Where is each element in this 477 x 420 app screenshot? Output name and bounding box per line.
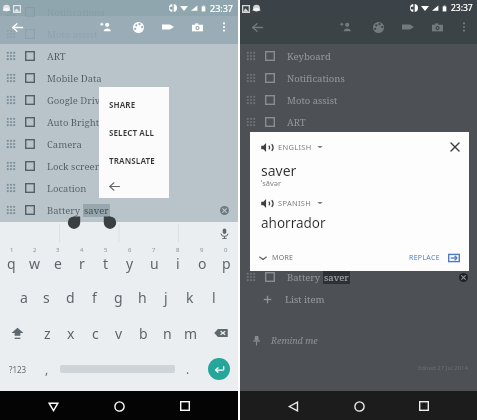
button[interactable]: Back xyxy=(246,16,268,38)
staticText: Location xyxy=(47,182,87,195)
button[interactable]: Space xyxy=(58,351,177,387)
staticText: i xyxy=(176,254,180,273)
staticText: TRANSLATE xyxy=(109,155,155,166)
button[interactable]: REPLACE xyxy=(409,252,460,264)
button[interactable]: Location xyxy=(0,177,238,199)
staticText: SHARE xyxy=(109,99,136,110)
button[interactable]: Colour xyxy=(367,16,389,38)
button[interactable]: 8 xyxy=(166,244,190,279)
button[interactable]: SPANISH xyxy=(261,192,469,214)
staticText: Battery xyxy=(287,271,323,284)
button[interactable]: Notifications xyxy=(240,67,477,89)
staticText: , xyxy=(45,361,49,377)
button[interactable]: 7 xyxy=(142,244,166,279)
button[interactable]: Back xyxy=(280,393,306,419)
button[interactable]: Home xyxy=(346,393,372,419)
button[interactable]: l xyxy=(202,279,226,315)
button[interactable]: 1 xyxy=(0,244,23,279)
button[interactable]: Enter xyxy=(199,351,238,387)
staticText: k xyxy=(186,288,194,307)
button[interactable]: g xyxy=(106,279,130,315)
button[interactable]: 9 xyxy=(190,244,214,279)
button[interactable]: Recents xyxy=(172,393,198,419)
button[interactable]: h xyxy=(130,279,154,315)
button[interactable]: s xyxy=(35,279,58,315)
staticText: 9 xyxy=(200,246,204,254)
button[interactable]: Battery xyxy=(0,199,238,221)
button[interactable]: 3 xyxy=(46,244,70,279)
button[interactable]: SELECT ALL xyxy=(99,118,169,146)
button[interactable]: k xyxy=(178,279,202,315)
button[interactable]: b xyxy=(131,315,155,351)
button[interactable]: Back xyxy=(6,16,28,38)
button[interactable]: Camera xyxy=(426,16,448,38)
button[interactable]: More options xyxy=(213,16,235,38)
button[interactable]: Label xyxy=(397,16,419,38)
button[interactable]: 4 xyxy=(70,244,94,279)
button[interactable]: 5 xyxy=(94,244,118,279)
staticText: . xyxy=(186,361,190,377)
button[interactable]: a xyxy=(12,279,35,315)
button[interactable]: Add person xyxy=(335,16,357,38)
button[interactable]: Moto assist xyxy=(240,89,477,111)
button[interactable]: 2 xyxy=(23,244,46,279)
button[interactable]: Recents xyxy=(411,393,437,419)
staticText: Auto Brightness xyxy=(47,116,119,129)
button[interactable]: List item xyxy=(240,288,477,310)
button[interactable]: Camera xyxy=(0,133,238,155)
button[interactable]: ART xyxy=(240,111,477,133)
button[interactable]: Camera xyxy=(186,16,208,38)
button[interactable]: x xyxy=(59,315,83,351)
button[interactable]: ART xyxy=(0,45,238,67)
button[interactable]: ?123 xyxy=(0,351,36,387)
button[interactable]: Colour xyxy=(127,16,149,38)
button[interactable]: j xyxy=(154,279,178,315)
button[interactable]: Keyboard xyxy=(240,45,477,67)
staticText: g xyxy=(114,288,123,307)
staticText: a xyxy=(20,288,28,307)
button[interactable]: Back xyxy=(40,393,66,419)
button[interactable]: TRANSLATE xyxy=(99,146,169,174)
button[interactable]: Backspace xyxy=(203,315,238,351)
staticText: Remind me xyxy=(271,334,318,346)
button[interactable]: Lock screen xyxy=(0,155,238,177)
staticText: Moto assist xyxy=(287,94,338,107)
button[interactable]: c xyxy=(83,315,107,351)
button[interactable]: Add person xyxy=(95,16,117,38)
button[interactable]: SHARE xyxy=(99,90,169,118)
button[interactable]: m xyxy=(179,315,203,351)
button[interactable]: Clear xyxy=(216,202,232,218)
button[interactable]: More options xyxy=(453,16,475,38)
button[interactable]: Back xyxy=(99,174,169,198)
button[interactable]: v xyxy=(107,315,131,351)
button[interactable]: Google Drive xyxy=(0,89,238,111)
button[interactable]: z xyxy=(35,315,59,351)
button[interactable]: d xyxy=(58,279,82,315)
button[interactable]: Shift xyxy=(0,315,35,351)
staticText: r xyxy=(79,254,85,273)
button[interactable]: , xyxy=(36,351,58,387)
button[interactable]: Mobile Data xyxy=(0,67,238,89)
button[interactable]: 6 xyxy=(118,244,142,279)
button[interactable]: 0 xyxy=(214,244,238,279)
button[interactable]: Close xyxy=(444,136,466,158)
button[interactable]: f xyxy=(82,279,106,315)
button[interactable]: ENGLISH xyxy=(261,136,464,158)
button[interactable]: . xyxy=(177,351,199,387)
staticText: x xyxy=(67,324,75,343)
button[interactable]: n xyxy=(155,315,179,351)
button[interactable]: Home xyxy=(106,393,132,419)
button[interactable]: Voice input xyxy=(216,225,232,241)
button[interactable]: Auto Brightness xyxy=(0,111,238,133)
button[interactable]: MORE xyxy=(259,253,294,263)
staticText: Notifications xyxy=(47,6,105,19)
staticText: saver xyxy=(324,271,349,284)
staticText: saver xyxy=(261,161,297,180)
button[interactable]: Battery xyxy=(240,266,477,288)
button[interactable]: Clear xyxy=(455,269,471,285)
button[interactable]: Label xyxy=(157,16,179,38)
staticText: d xyxy=(66,288,75,307)
staticText: y xyxy=(126,254,134,273)
